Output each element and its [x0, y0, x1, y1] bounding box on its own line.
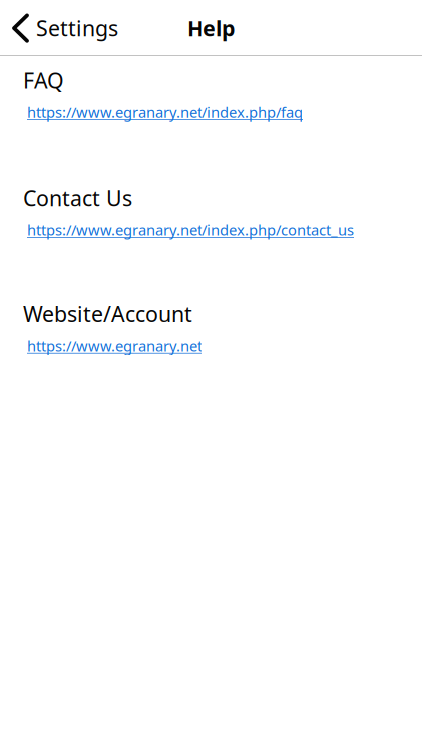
button[interactable]: https://www.egranary.net/index.php/conta… [23, 212, 360, 242]
button[interactable]: https://www.egranary.net/index.php/faq [23, 94, 309, 124]
staticText: Settings [36, 14, 118, 42]
staticText: https://www.egranary.net/index.php/faq [27, 102, 303, 122]
staticText: Help [187, 14, 235, 42]
staticText: FAQ [23, 66, 64, 94]
button[interactable]: https://www.egranary.net [23, 328, 208, 357]
button[interactable]: Settings [0, 6, 126, 50]
staticText: https://www.egranary.net [27, 336, 202, 355]
staticText: https://www.egranary.net/index.php/conta… [27, 220, 354, 240]
staticText: Website/Account [23, 300, 192, 328]
staticText: Contact Us [23, 184, 132, 212]
